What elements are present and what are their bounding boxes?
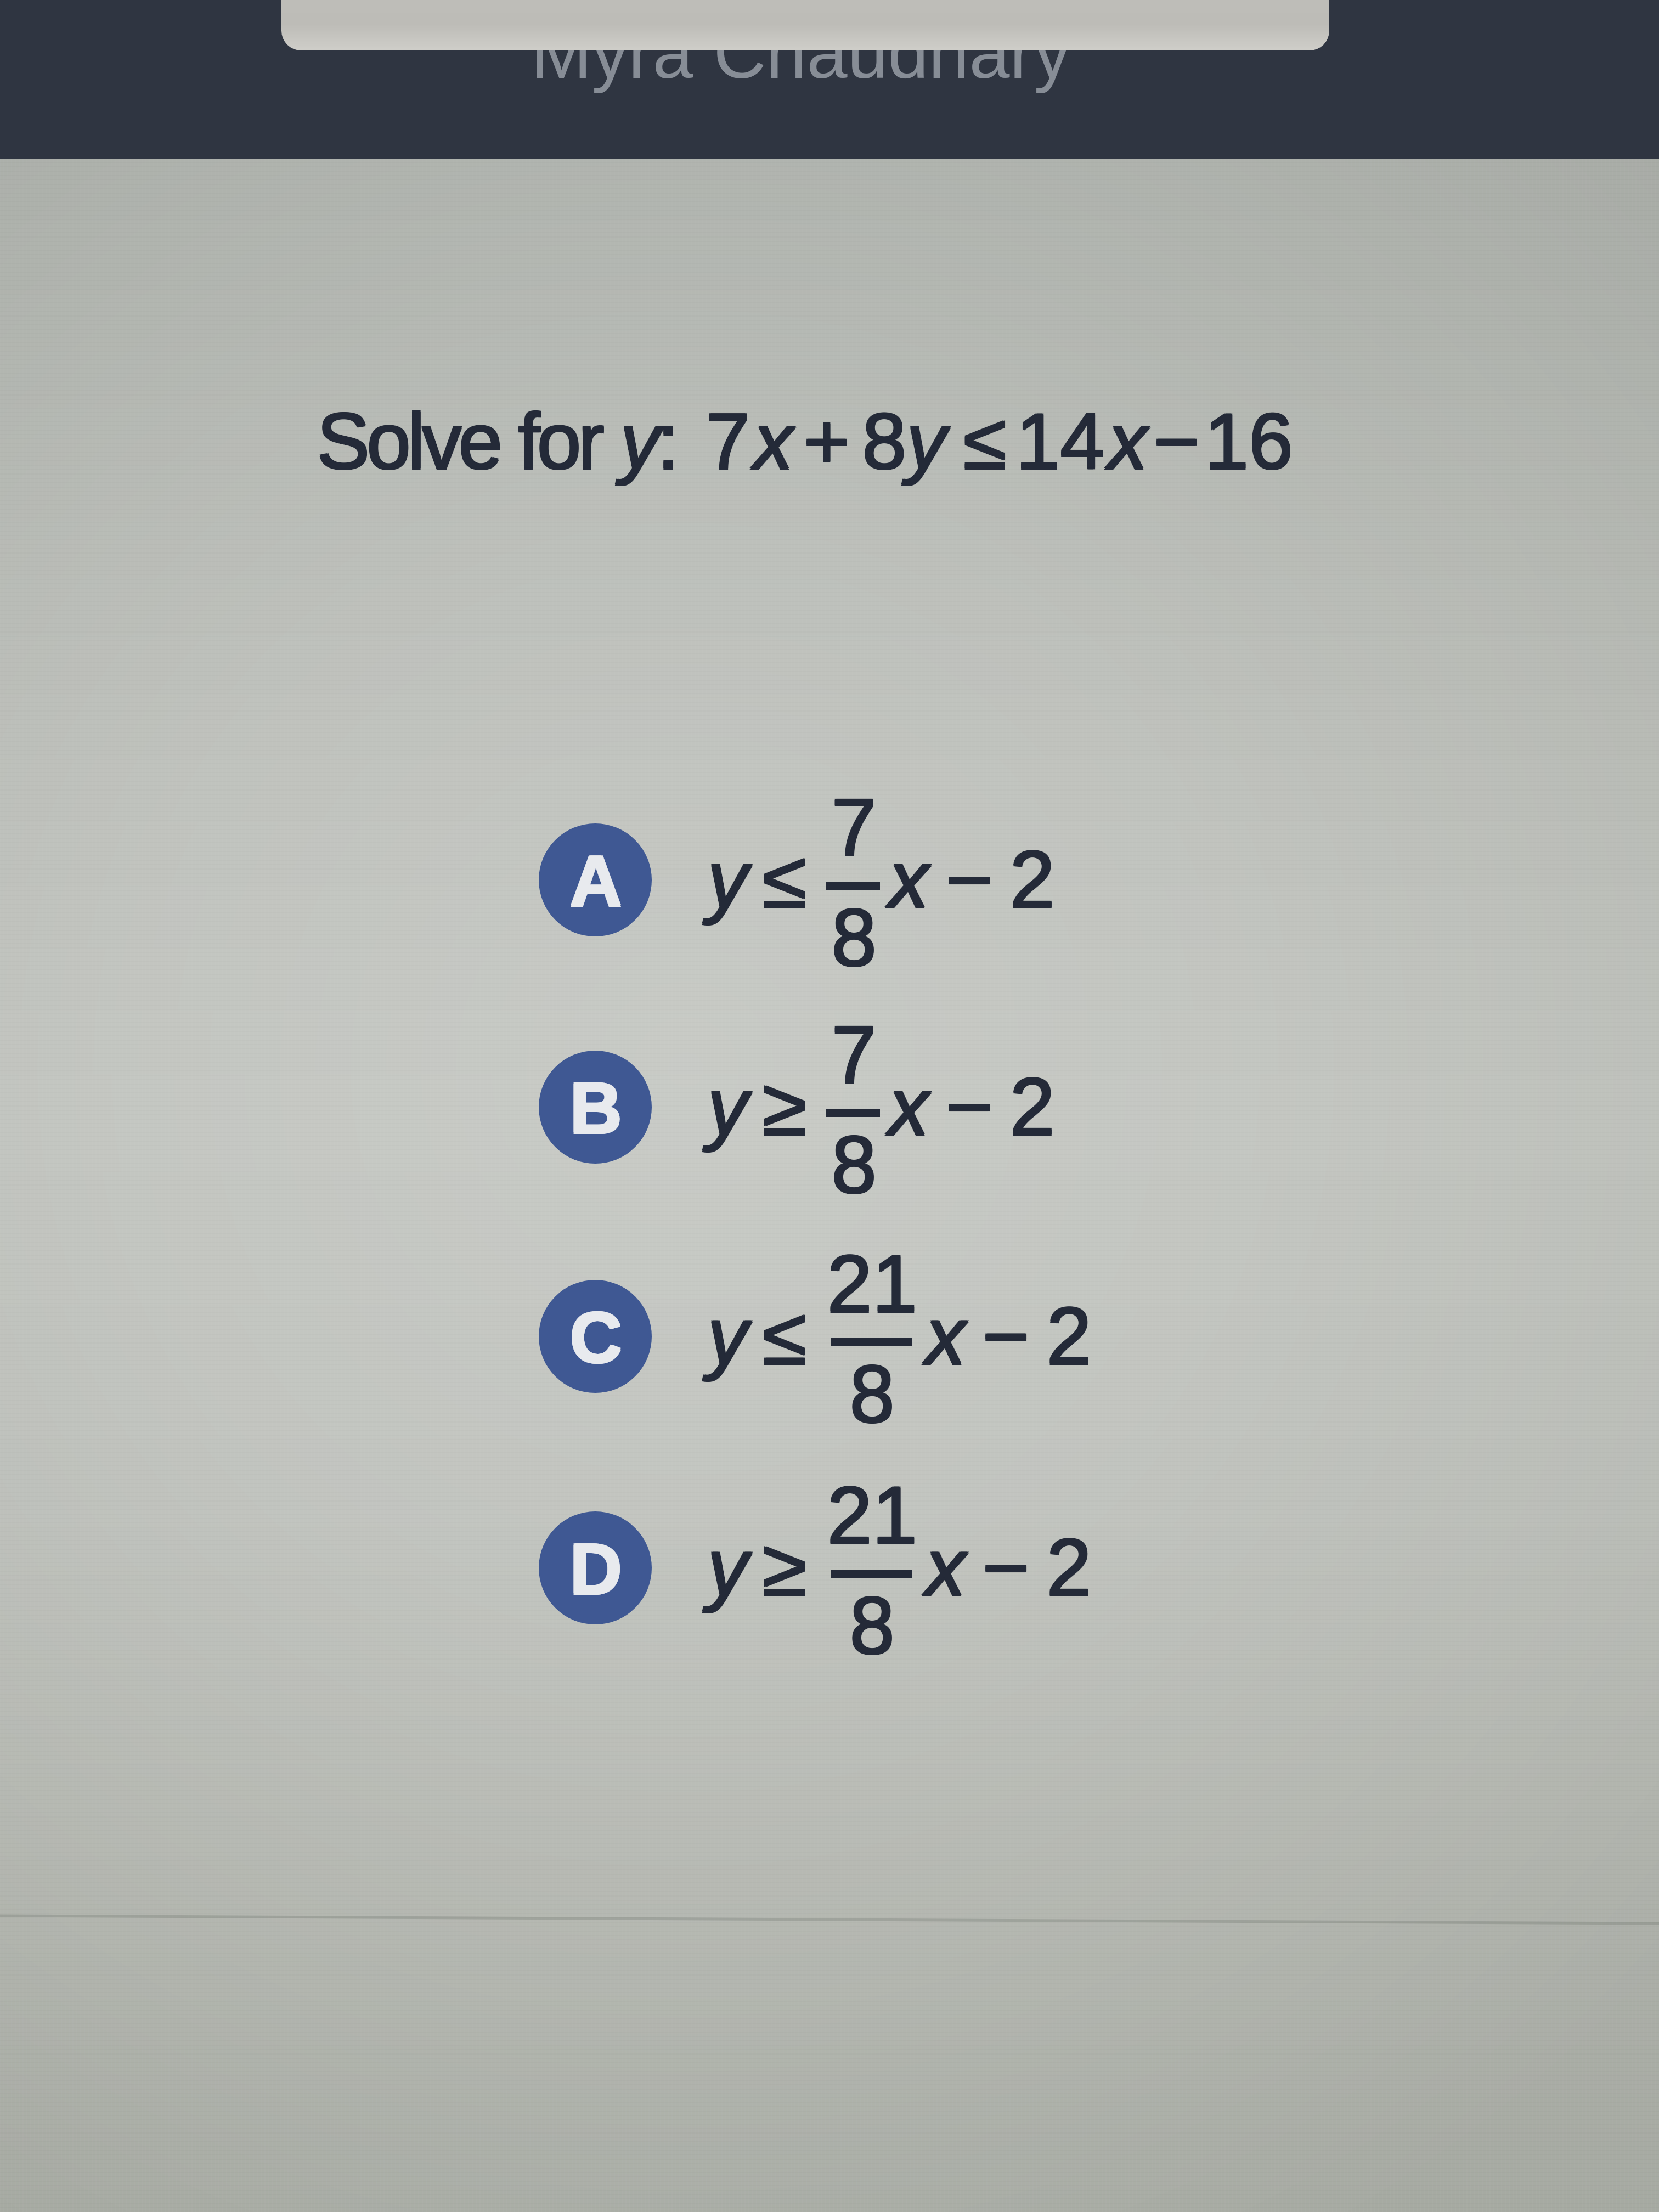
staticText: y: [708, 835, 749, 926]
staticText: x: [926, 1523, 967, 1613]
button[interactable]: B: [539, 981, 1054, 1233]
staticText: y: [707, 1291, 747, 1382]
staticText: ≤: [761, 835, 806, 926]
staticText: 16: [1205, 396, 1294, 485]
staticText: ≤: [962, 396, 1006, 485]
staticText: y: [621, 396, 658, 485]
staticText: 21: [826, 1238, 917, 1328]
staticText: 8: [863, 396, 907, 485]
staticText: 7: [832, 1008, 878, 1099]
staticText: 8: [863, 398, 907, 487]
button[interactable]: D: [539, 1442, 1091, 1694]
staticText: :: [656, 398, 679, 487]
staticText: −: [983, 1521, 1031, 1612]
staticText: 7: [831, 781, 876, 872]
staticText: −: [945, 835, 992, 926]
staticText: −: [1153, 398, 1199, 487]
staticText: x: [888, 833, 928, 924]
staticText: 21: [828, 1238, 918, 1328]
button[interactable]: C: [539, 1210, 1091, 1463]
staticText: −: [983, 1291, 1031, 1382]
staticText: x: [753, 396, 793, 485]
staticText: y: [906, 396, 946, 485]
staticText: 8: [849, 1348, 894, 1438]
staticText: x: [926, 1521, 967, 1612]
staticText: x: [889, 1060, 930, 1151]
staticText: y: [708, 833, 749, 924]
staticText: −: [946, 835, 994, 926]
staticText: 21: [828, 1471, 918, 1561]
button[interactable]: A: [539, 754, 1054, 1006]
staticText: −: [1154, 398, 1201, 487]
staticText: 8: [831, 893, 876, 984]
staticText: 7: [707, 398, 751, 487]
staticText: 8: [861, 396, 906, 485]
staticText: −: [1154, 396, 1201, 485]
staticText: 2: [1046, 1521, 1091, 1612]
staticText: ≤: [761, 1291, 806, 1382]
staticText: A: [569, 840, 622, 921]
staticText: Myra Chaudhary: [531, 12, 1071, 94]
staticText: 8: [850, 1348, 896, 1438]
staticText: B: [569, 1067, 622, 1148]
staticText: B: [569, 1069, 622, 1149]
staticText: −: [1153, 396, 1199, 485]
staticText: 7: [831, 1010, 876, 1101]
staticText: 7: [707, 396, 751, 485]
staticText: :: [658, 398, 680, 487]
staticText: 2: [1009, 833, 1054, 924]
staticText: 21: [828, 1469, 918, 1560]
staticText: A: [569, 842, 622, 922]
staticText: B: [571, 1067, 623, 1148]
staticText: 2: [1011, 835, 1056, 926]
staticText: y: [708, 1523, 749, 1613]
staticText: x: [924, 1521, 965, 1612]
staticText: −: [945, 1060, 992, 1151]
staticText: 8: [861, 398, 906, 487]
staticText: x: [888, 835, 928, 926]
staticText: y: [707, 1062, 747, 1153]
staticText: x: [926, 1291, 967, 1382]
staticText: C: [571, 1298, 623, 1379]
staticText: A: [571, 842, 623, 922]
staticText: 14: [1017, 398, 1105, 487]
staticText: +: [804, 398, 851, 487]
staticText: y: [707, 1523, 747, 1613]
staticText: −: [945, 1062, 992, 1153]
staticText: A: [571, 840, 623, 921]
staticText: x: [924, 1291, 965, 1382]
staticText: 14: [1017, 396, 1105, 485]
staticText: +: [803, 396, 849, 485]
staticText: C: [569, 1298, 622, 1379]
staticText: x: [889, 1062, 930, 1153]
staticText: +: [803, 398, 849, 487]
staticText: 2: [1009, 835, 1054, 926]
staticText: 2: [1009, 1062, 1054, 1153]
staticText: ≥: [761, 1062, 806, 1153]
staticText: ≤: [763, 833, 808, 924]
staticText: ≤: [964, 396, 1008, 485]
staticText: −: [945, 833, 992, 924]
staticText: −: [983, 1290, 1031, 1380]
staticText: x: [889, 835, 930, 926]
staticText: ≥: [763, 1062, 808, 1153]
staticText: ≤: [761, 1290, 806, 1380]
staticText: y: [708, 1062, 749, 1153]
staticText: 21: [828, 1239, 918, 1330]
staticText: x: [1109, 398, 1149, 487]
staticText: y: [906, 398, 946, 487]
staticText: 7: [832, 781, 878, 872]
staticText: 2: [1011, 1062, 1056, 1153]
staticText: y: [907, 396, 947, 485]
staticText: D: [571, 1530, 623, 1610]
staticText: 2: [1011, 833, 1056, 924]
staticText: 21: [826, 1239, 917, 1330]
staticText: ≥: [763, 1523, 808, 1613]
staticText: y: [707, 833, 747, 924]
staticText: ≤: [964, 398, 1008, 487]
staticText: 2: [1047, 1290, 1093, 1380]
staticText: −: [981, 1290, 1029, 1380]
staticText: ≤: [763, 1291, 808, 1382]
staticText: −: [946, 833, 994, 924]
staticText: 8: [831, 891, 876, 982]
